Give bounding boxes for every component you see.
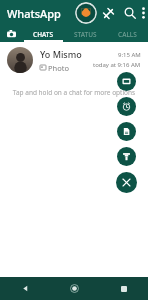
button[interactable]: Reminder (117, 97, 136, 116)
button[interactable]: New chat (117, 72, 136, 91)
staticText: STATUS (74, 30, 97, 39)
button[interactable]: Camera (0, 26, 22, 42)
button[interactable]: Close (116, 172, 137, 193)
button[interactable]: Yo Mismo (0, 42, 148, 78)
staticText: today at 9:16 AM (93, 61, 141, 69)
staticText: Tap and hold on a chat for more options (0, 88, 148, 97)
staticText: Photo (48, 63, 69, 73)
button[interactable]: Recent apps (99, 277, 148, 300)
button[interactable]: CALLS (106, 26, 148, 42)
button[interactable]: Home (50, 277, 99, 300)
button[interactable]: Search (119, 2, 141, 24)
button[interactable]: Back (0, 277, 50, 300)
button[interactable]: Paint (117, 147, 136, 166)
button[interactable]: Document (117, 122, 136, 141)
button[interactable]: New (97, 2, 119, 24)
staticText: Yo Mismo (40, 48, 82, 60)
staticText: WhatsApp (7, 6, 61, 21)
staticText: CHATS (33, 30, 54, 39)
button[interactable]: More options (141, 4, 145, 22)
staticText: CALLS (118, 30, 137, 39)
button[interactable]: CHATS (22, 26, 64, 42)
button[interactable]: Profile (75, 2, 97, 24)
button[interactable]: STATUS (64, 26, 106, 42)
staticText: 9:15 AM (118, 51, 141, 59)
